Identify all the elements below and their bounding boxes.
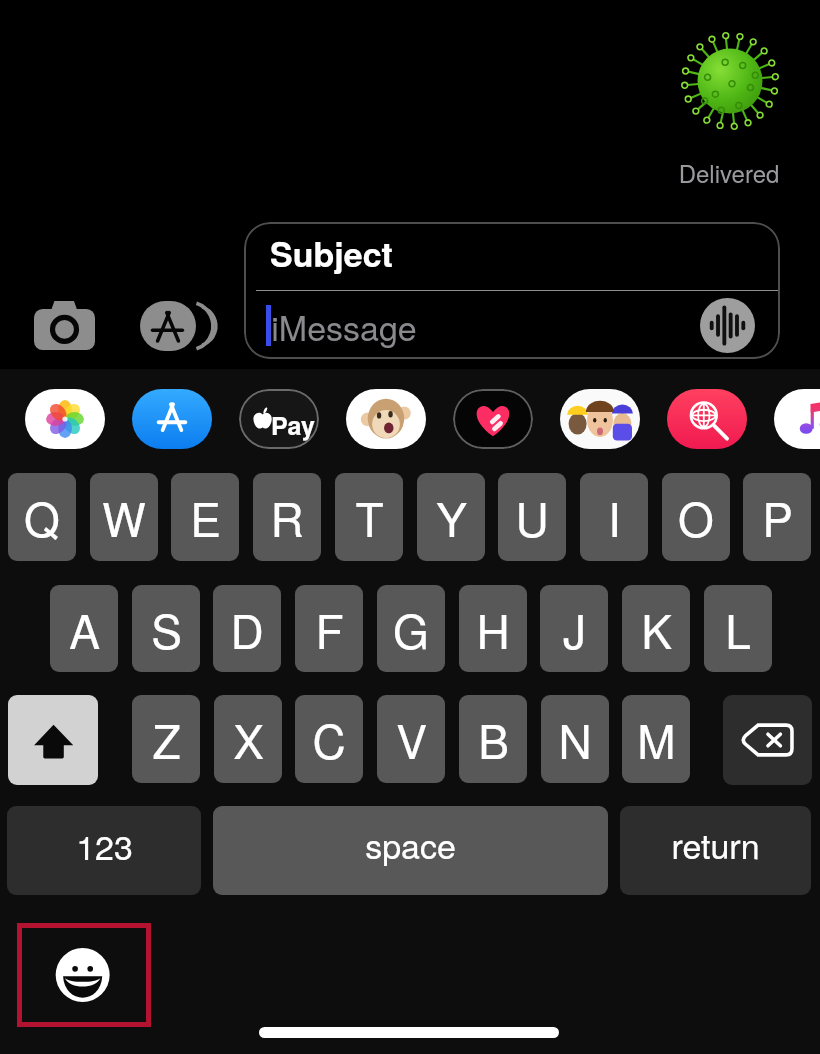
button[interactable]: Camera	[34, 301, 95, 350]
button[interactable]: Animoji	[346, 389, 426, 449]
button[interactable]: Photos	[25, 389, 105, 449]
staticText: L	[725, 596, 751, 662]
staticText: C	[312, 706, 346, 772]
button[interactable]: B	[459, 695, 527, 783]
staticText: U	[515, 484, 549, 550]
staticText: Delivered	[640, 155, 818, 189]
button[interactable]: Z	[132, 695, 200, 783]
button[interactable]: P	[743, 473, 811, 561]
button[interactable]: Fitness	[453, 389, 533, 449]
button[interactable]: W	[90, 473, 158, 561]
button[interactable]: L	[704, 585, 772, 672]
button[interactable]: F	[295, 585, 363, 672]
staticText: Y	[436, 484, 467, 550]
button[interactable]: N	[541, 695, 609, 783]
button[interactable]: E	[171, 473, 239, 561]
button[interactable]: App Store	[132, 389, 212, 449]
button[interactable]: G	[377, 585, 445, 672]
staticText: Subject	[270, 229, 393, 278]
button[interactable]: return	[620, 806, 811, 895]
button[interactable]: 123	[7, 806, 201, 895]
button[interactable]: V	[377, 695, 445, 783]
button[interactable]: U	[498, 473, 566, 561]
staticText: iMessage	[271, 302, 417, 351]
button[interactable]: X	[214, 695, 282, 783]
button[interactable]: Shift	[8, 695, 98, 785]
staticText: Q	[24, 484, 60, 550]
button[interactable]: Memoji	[560, 389, 640, 449]
button[interactable]: M	[622, 695, 690, 783]
button[interactable]: S	[132, 585, 200, 672]
staticText: Z	[152, 706, 181, 772]
staticText: J	[563, 596, 586, 662]
staticText: T	[355, 484, 384, 550]
button[interactable]: I	[580, 473, 648, 561]
staticText: H	[476, 596, 510, 662]
button[interactable]: A	[50, 585, 118, 672]
staticText: M	[637, 706, 676, 772]
button[interactable]: D	[213, 585, 281, 672]
staticText: 123	[76, 821, 133, 870]
button[interactable]: R	[253, 473, 321, 561]
staticText: V	[396, 706, 427, 772]
button[interactable]: C	[295, 695, 363, 783]
staticText: space	[365, 820, 456, 869]
button[interactable]: H	[459, 585, 527, 672]
staticText: G	[393, 596, 429, 662]
button[interactable]: K	[622, 585, 690, 672]
staticText: N	[558, 706, 592, 772]
button[interactable]: space	[213, 806, 608, 895]
staticText: S	[151, 596, 182, 662]
button[interactable]: Apple Pay	[239, 389, 319, 449]
staticText: K	[641, 596, 672, 662]
button[interactable]: Images	[667, 389, 747, 449]
button[interactable]: Apps	[140, 301, 210, 351]
button[interactable]: Music	[774, 389, 820, 449]
button[interactable]: T	[335, 473, 403, 561]
button[interactable]: J	[540, 585, 608, 672]
staticText: O	[678, 484, 714, 550]
button[interactable]: Y	[417, 473, 485, 561]
button[interactable]: Q	[8, 473, 76, 561]
staticText: return	[671, 820, 760, 869]
button[interactable]: Record audio	[700, 298, 755, 353]
staticText: X	[233, 706, 264, 772]
staticText: B	[478, 706, 509, 772]
button[interactable]: O	[662, 473, 730, 561]
staticText: E	[190, 484, 221, 550]
staticText: D	[230, 596, 264, 662]
staticText: F	[315, 596, 344, 662]
staticText: P	[762, 484, 793, 550]
staticText: Pay	[271, 407, 315, 443]
staticText: R	[270, 484, 304, 550]
staticText: W	[102, 484, 146, 550]
button[interactable]: Subject	[244, 222, 780, 359]
button[interactable]: Backspace	[723, 695, 812, 785]
staticText: I	[608, 484, 621, 550]
staticText: A	[69, 596, 100, 662]
button[interactable]: Emoji keyboard	[17, 923, 151, 1027]
